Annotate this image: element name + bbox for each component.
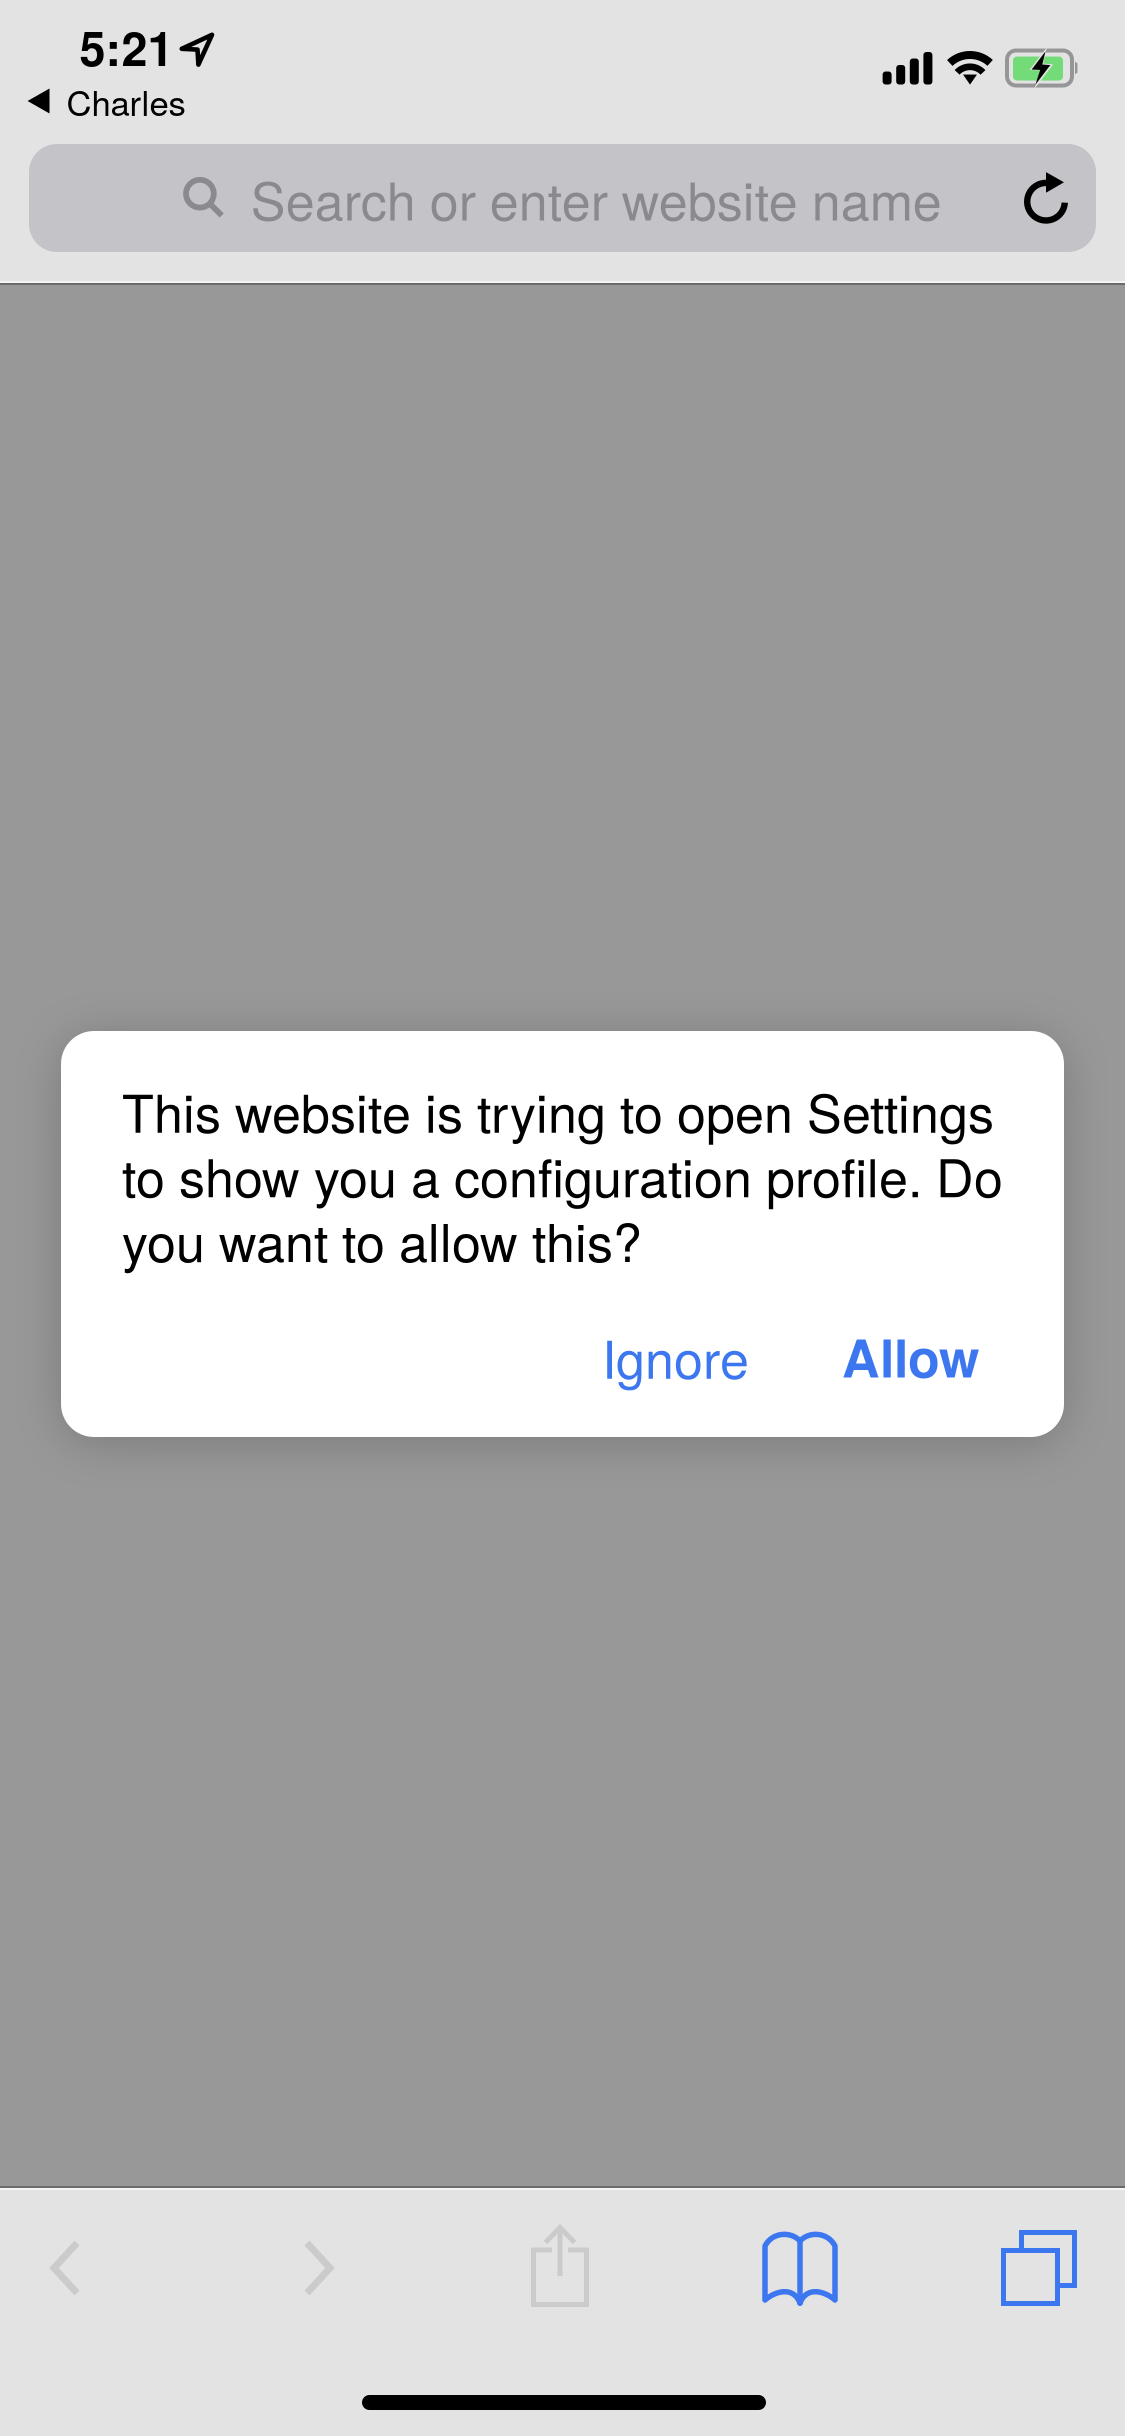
button[interactable]: Tabs <box>964 2213 1114 2323</box>
button[interactable]: Bookmarks <box>725 2214 875 2324</box>
button[interactable]: Ignore <box>578 1304 773 1409</box>
staticText: Ignore <box>602 1320 749 1393</box>
staticText: 5:21 <box>79 14 173 80</box>
button[interactable]: Back <box>0 2213 141 2323</box>
button[interactable]: Forward <box>243 2213 393 2323</box>
button[interactable]: Share <box>485 2211 635 2321</box>
staticText: Allow <box>842 1320 979 1393</box>
button[interactable]: Search or enter website name <box>29 144 1096 252</box>
staticText: to show you a configuration profile. Do <box>122 1139 1003 1211</box>
button[interactable]: Allow <box>818 1304 1003 1409</box>
button[interactable]: Charles <box>21 69 191 133</box>
staticText: Search or enter website name <box>251 162 942 234</box>
staticText: Charles <box>66 77 185 125</box>
button[interactable]: Reload <box>1006 152 1084 242</box>
staticText: you want to allow this? <box>122 1203 642 1276</box>
staticText: This website is trying to open Settings <box>122 1074 994 1147</box>
